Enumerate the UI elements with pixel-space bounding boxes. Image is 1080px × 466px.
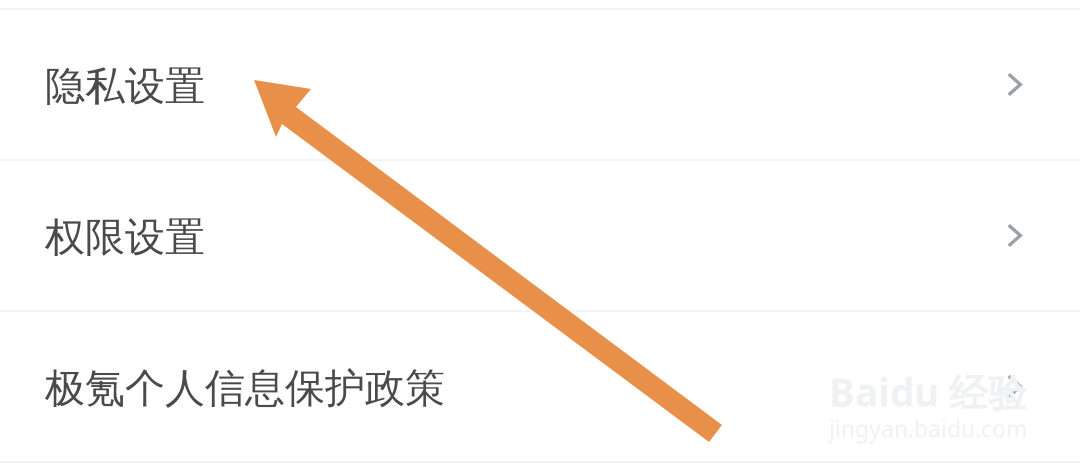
staticText: Baidu 经验 <box>829 366 1027 417</box>
button[interactable]: 权限设置 <box>0 161 1080 310</box>
staticText: 极氪个人信息保护政策 <box>45 364 445 413</box>
staticText: 隐私设置 <box>45 62 205 111</box>
button[interactable]: 隐私设置 <box>0 10 1080 159</box>
button[interactable]: 极氪个人信息保护政策 <box>0 312 1080 461</box>
staticText: 权限设置 <box>45 213 205 262</box>
staticText: jingyan.baidu.com <box>829 413 1027 444</box>
